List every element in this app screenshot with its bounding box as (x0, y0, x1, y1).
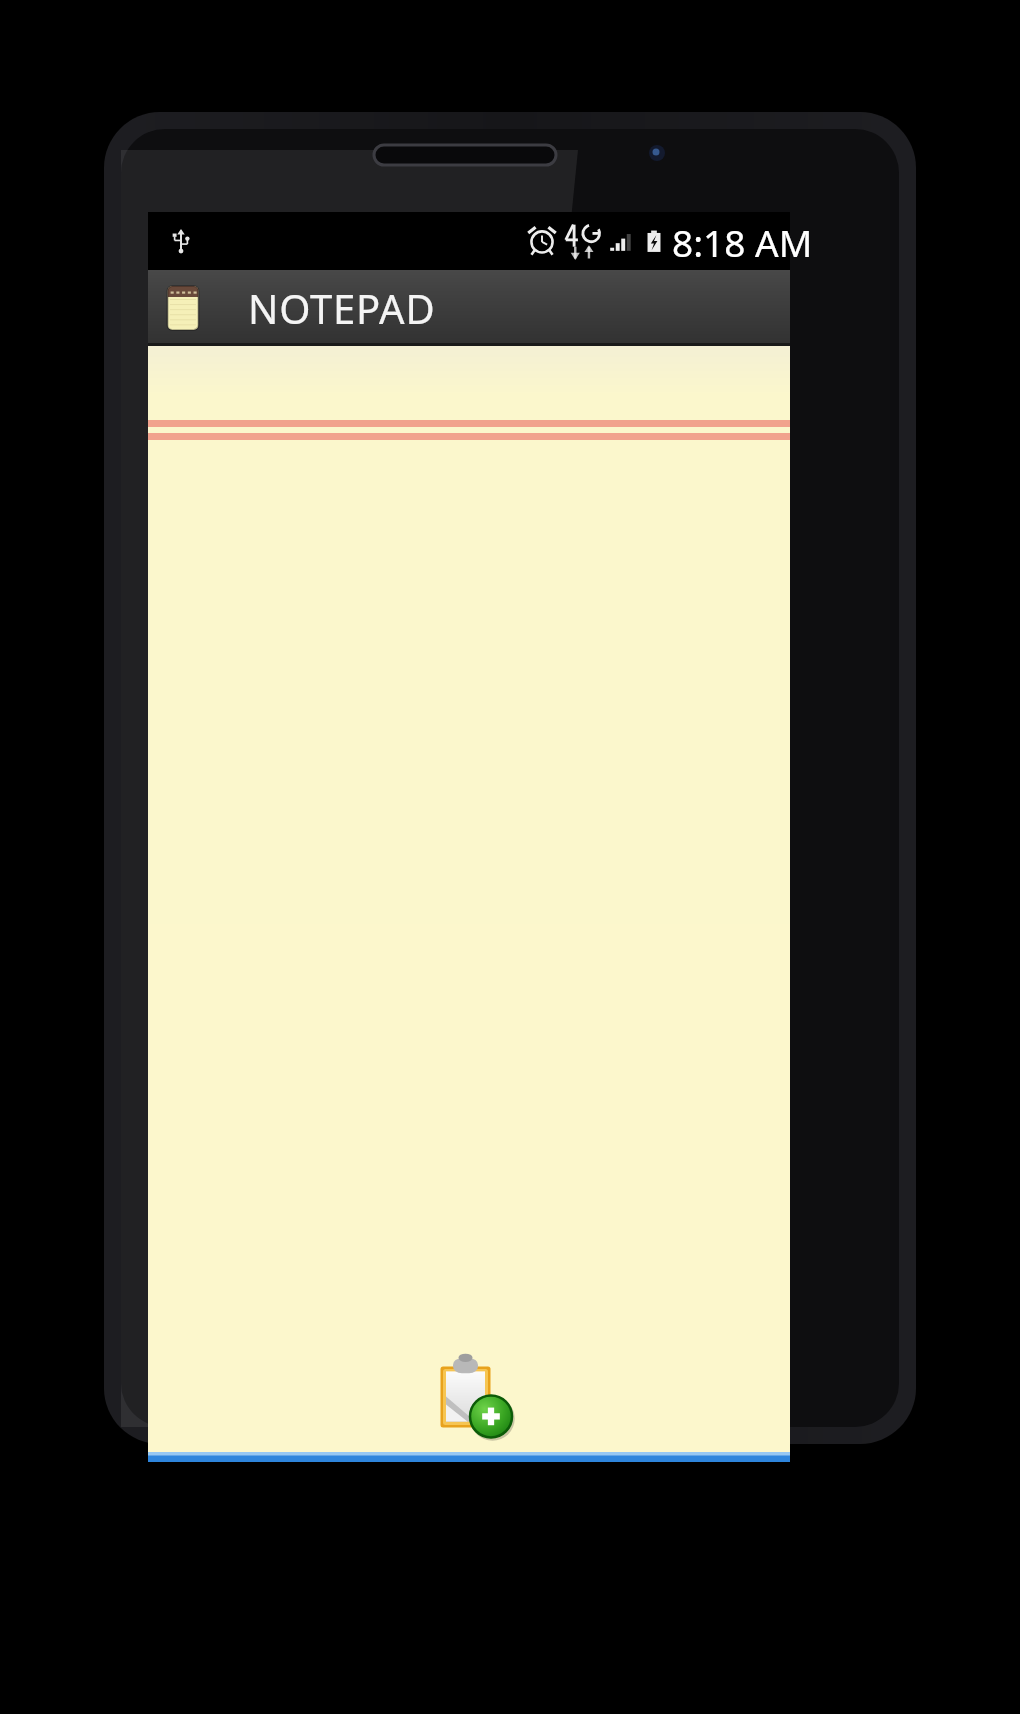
button[interactable]: NOTEPAD (148, 270, 790, 346)
staticText: NOTEPAD (248, 281, 436, 335)
button[interactable]: Add note (416, 1380, 524, 1454)
staticText: 8:18 AM (672, 217, 813, 267)
